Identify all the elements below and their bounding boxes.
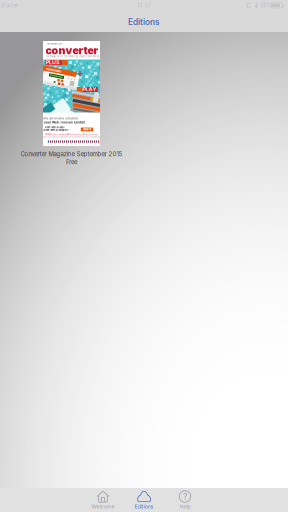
staticText: Web converting technology, Adhesive tape… xyxy=(42,136,100,138)
staticText: ? xyxy=(183,491,187,502)
staticText: for your Web Tension Control xyxy=(39,121,85,124)
staticText: SEPTEMBER 2015 xyxy=(47,42,62,45)
button[interactable]: Editions xyxy=(123,488,164,512)
staticText: Never been so complete ! xyxy=(43,129,69,131)
staticText: converter xyxy=(82,128,91,131)
staticText: Editions xyxy=(134,503,153,510)
staticText: the magazine for the converting industry… xyxy=(46,55,99,58)
staticText: Editions xyxy=(128,17,160,27)
staticText: + xyxy=(76,66,83,79)
staticText: 89% xyxy=(260,2,271,9)
button[interactable]: Welcome xyxy=(82,488,123,512)
staticText: Free xyxy=(66,158,77,166)
staticText: EDITORS: Converter machines & Web Tensio… xyxy=(44,134,97,136)
staticText: Never been so easy ! xyxy=(44,126,65,129)
staticText: converter xyxy=(45,44,98,57)
button[interactable]: Editions xyxy=(109,14,179,30)
staticText: Converter Magazine September 2015 xyxy=(20,150,122,158)
button[interactable]: SEPTEMBER 2015 xyxy=(43,41,100,146)
button[interactable]: ? xyxy=(164,488,205,512)
staticText: Help xyxy=(179,503,190,510)
staticText: The all-in-one solution xyxy=(42,117,78,120)
staticText: Welcome xyxy=(91,503,114,510)
staticText: PLAY xyxy=(82,86,96,93)
staticText: iPad xyxy=(1,2,12,9)
staticText: 14:07 xyxy=(137,2,151,9)
staticText: converter xyxy=(46,68,61,72)
staticText: PLUS xyxy=(46,59,59,66)
